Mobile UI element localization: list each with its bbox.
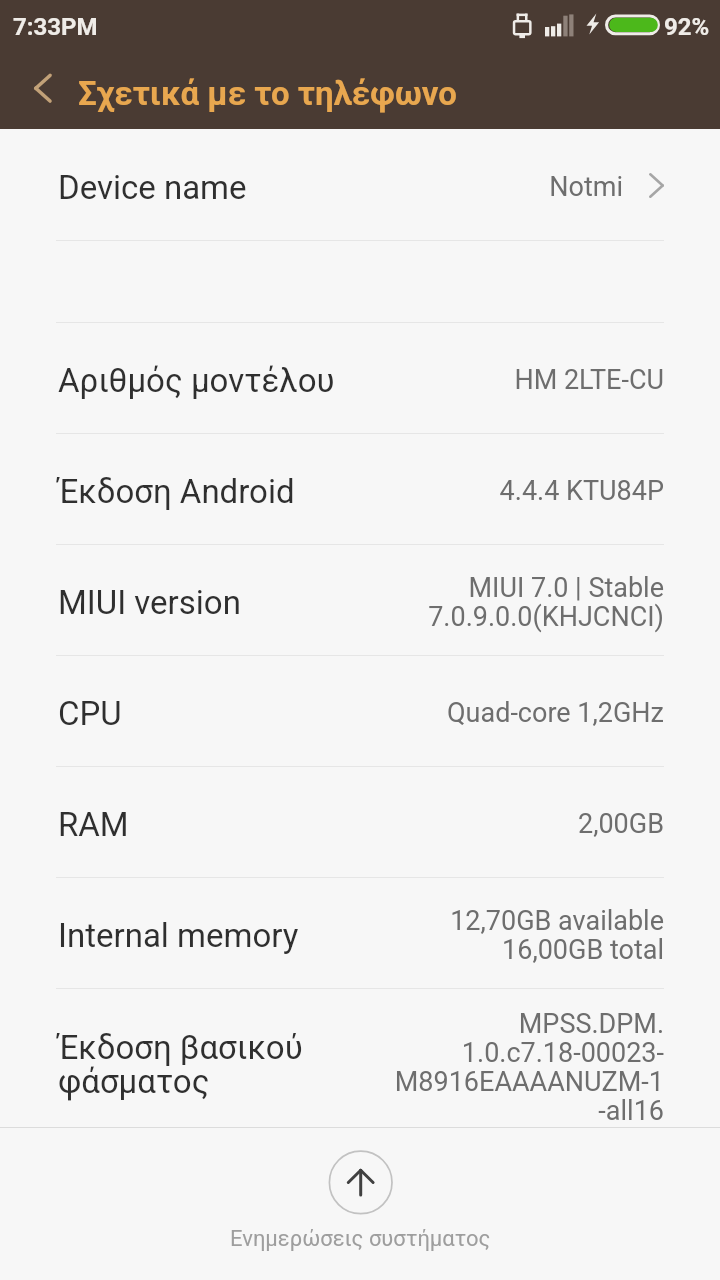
staticText: Ενημερώσεις συστήματος xyxy=(230,1226,491,1252)
staticText: 12,70GB available 16,00GB total xyxy=(450,905,664,966)
button[interactable]: Έκδοση Android xyxy=(0,434,720,544)
button[interactable]: CPU xyxy=(0,656,720,766)
staticText: 7:33PM xyxy=(13,13,98,41)
button[interactable]: Device name xyxy=(0,130,720,240)
button[interactable]: RAM xyxy=(0,767,720,877)
staticText: Αριθμός μοντέλου xyxy=(58,361,335,400)
staticText: Σχετικά με το τηλέφωνο xyxy=(78,74,457,113)
staticText: Internal memory xyxy=(58,916,299,955)
staticText: MIUI version xyxy=(58,583,241,622)
staticText: Quad-core 1,2GHz xyxy=(447,697,664,729)
button[interactable]: Back xyxy=(0,54,76,129)
staticText: CPU xyxy=(58,694,122,733)
staticText: MPSS.DPM. 1.0.c7.18-00023- M8916EAAAANUZ… xyxy=(394,1008,664,1126)
button[interactable]: Αριθμός μοντέλου xyxy=(0,323,720,433)
staticText: HM 2LTE-CU xyxy=(514,364,664,396)
staticText: Έκδοση Android xyxy=(58,472,295,511)
staticText: 92% xyxy=(664,13,710,41)
button[interactable]: System updates xyxy=(0,1127,720,1280)
button[interactable]: MIUI version xyxy=(0,545,720,655)
staticText: RAM xyxy=(58,805,129,844)
button[interactable]: Έκδοση βασικού φάσματος xyxy=(0,989,720,1126)
staticText: 2,00GB xyxy=(577,808,664,840)
staticText: Έκδοση βασικού φάσματος xyxy=(58,1028,303,1101)
staticText: Notmi xyxy=(549,171,623,203)
staticText: 4.4.4 KTU84P xyxy=(499,475,664,507)
staticText: MIUI 7.0 | Stable 7.0.9.0.0(KHJCNCI) xyxy=(428,572,664,633)
button[interactable]: Internal memory xyxy=(0,878,720,988)
staticText: Device name xyxy=(58,168,247,207)
